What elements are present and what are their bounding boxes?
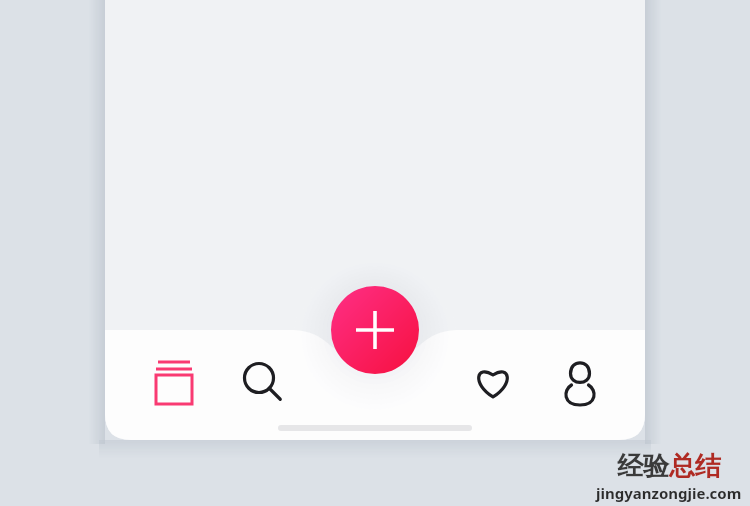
button[interactable]: Profile: [550, 355, 610, 411]
button[interactable]: Feed: [144, 355, 204, 411]
button[interactable]: Search: [232, 355, 292, 411]
button[interactable]: Likes: [463, 355, 523, 411]
staticText: 经验总结: [617, 450, 721, 483]
staticText: jingyanzongjie.com: [596, 483, 742, 503]
button[interactable]: Add: [331, 286, 419, 374]
